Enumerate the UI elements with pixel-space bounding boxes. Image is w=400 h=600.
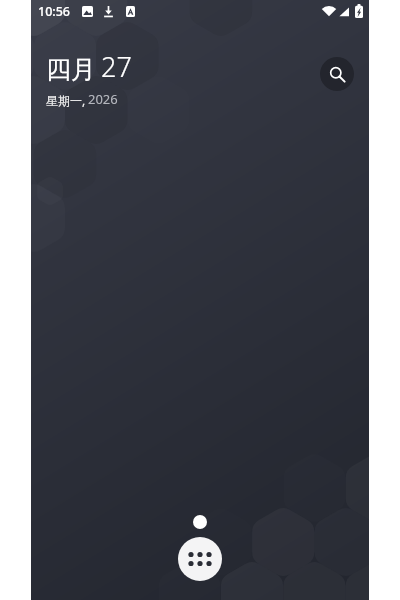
button[interactable]: Page indicator (193, 515, 207, 529)
button[interactable]: Search (320, 57, 354, 91)
staticText: 27 (101, 48, 132, 85)
staticText: 星期一, (46, 92, 86, 108)
staticText: 四月 (46, 54, 96, 85)
staticText: 2026 (88, 90, 118, 108)
staticText: 10:56 (38, 3, 71, 20)
button[interactable]: All apps (178, 537, 222, 581)
